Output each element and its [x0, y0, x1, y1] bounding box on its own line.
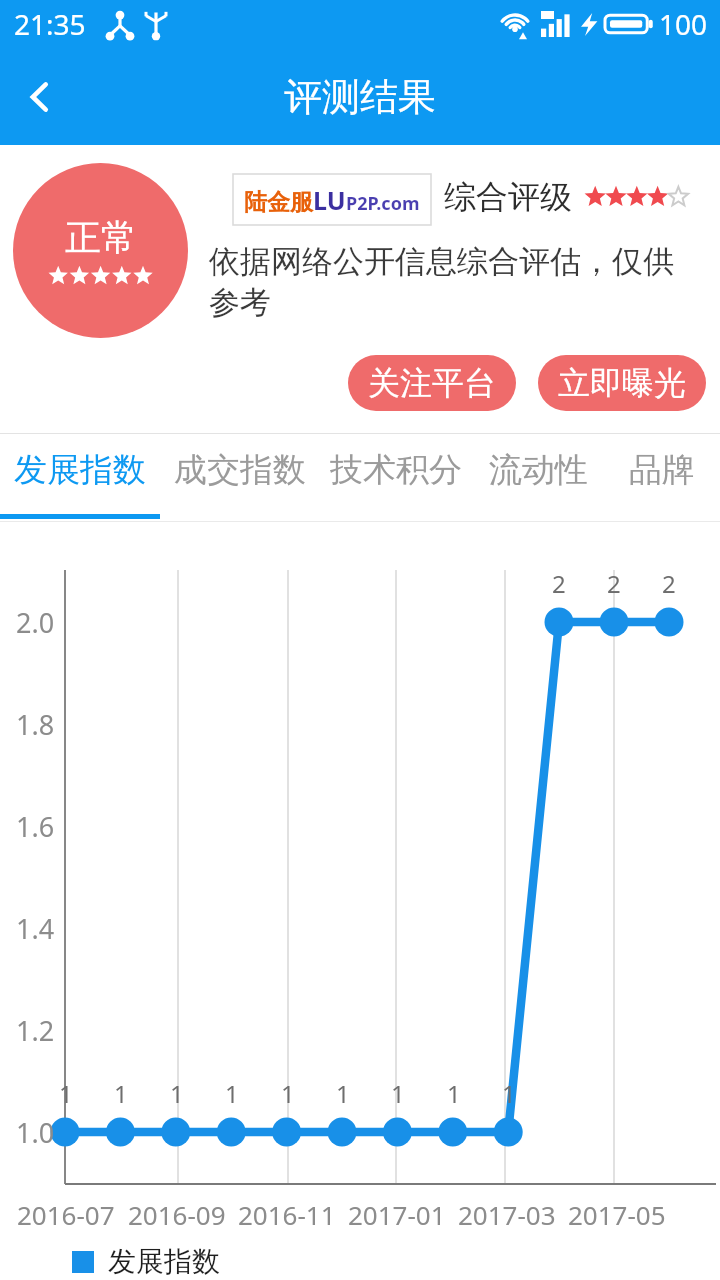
staticText: 陆金服	[244, 188, 313, 217]
staticText: 1.0	[16, 1114, 55, 1151]
staticText: 1.6	[16, 808, 55, 845]
staticText: LU	[313, 183, 346, 217]
staticText: 2016-09	[128, 1197, 226, 1232]
staticText: 1	[59, 1077, 73, 1110]
button[interactable]: 发展指数	[0, 434, 160, 521]
staticText: 1	[336, 1077, 350, 1110]
button[interactable]: 关注平台	[348, 355, 516, 411]
button[interactable]: 立即曝光	[538, 355, 706, 411]
button[interactable]: 正常	[13, 163, 188, 338]
staticText: 2	[662, 567, 676, 600]
staticText: 1	[281, 1077, 295, 1110]
staticText: 2017-01	[348, 1197, 446, 1232]
staticText: 2.0	[16, 604, 55, 641]
staticText: 发展指数	[14, 449, 146, 491]
staticText: 发展指数	[108, 1244, 220, 1279]
button[interactable]: 流动性	[472, 434, 604, 521]
staticText: 1	[447, 1077, 461, 1110]
button[interactable]: Back	[0, 57, 80, 137]
staticText: 流动性	[489, 449, 588, 491]
staticText: 2	[552, 567, 566, 600]
staticText: 100	[659, 5, 708, 43]
staticText: 成交指数	[174, 449, 306, 491]
staticText: 技术积分	[330, 449, 462, 491]
staticText: 正常	[65, 215, 137, 260]
staticText: 2016-11	[238, 1197, 336, 1232]
button[interactable]: 品牌	[604, 434, 720, 521]
staticText: 1	[170, 1077, 184, 1110]
staticText: 1	[502, 1077, 516, 1110]
staticText: 关注平台	[368, 363, 496, 403]
staticText: 2016-07	[17, 1197, 115, 1232]
staticText: P2P.com	[346, 191, 420, 216]
staticText: 1.8	[16, 706, 55, 743]
button[interactable]: 技术积分	[320, 434, 472, 521]
staticText: 2	[607, 567, 621, 600]
staticText: 1	[114, 1077, 128, 1110]
staticText: 1.4	[16, 910, 55, 947]
staticText: 依据网络公开信息综合评估，仅供参考	[209, 242, 697, 323]
staticText: 综合评级	[444, 177, 572, 217]
staticText: 1.2	[16, 1012, 55, 1049]
staticText: 2017-03	[458, 1197, 556, 1232]
staticText: 立即曝光	[558, 363, 686, 403]
staticText: 1	[225, 1077, 239, 1110]
staticText: 2017-05	[568, 1197, 666, 1232]
staticText: 1	[391, 1077, 405, 1110]
button[interactable]: 成交指数	[160, 434, 320, 521]
staticText: 品牌	[629, 449, 695, 491]
staticText: 21:35	[14, 5, 86, 43]
staticText: 评测结果	[284, 73, 436, 121]
